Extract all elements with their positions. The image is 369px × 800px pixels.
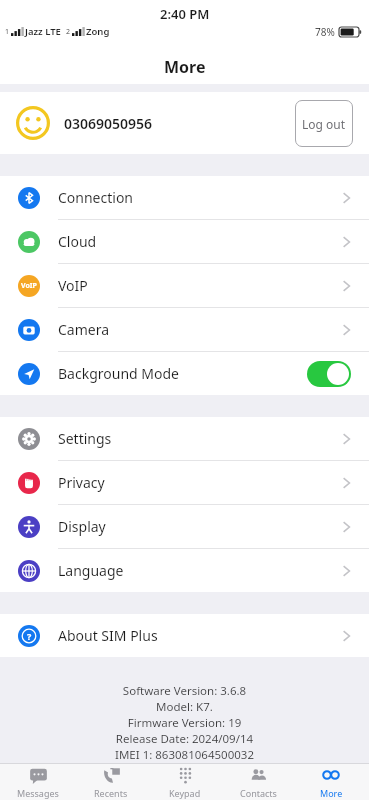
staticText: Display [58,517,342,536]
button[interactable]: Keypad [150,765,220,799]
button[interactable]: Background Mode [0,352,369,395]
staticText: Jazz LTE [25,25,61,38]
button[interactable]: Display [0,505,369,548]
staticText: Software Version: 3.6.8 [20,683,349,699]
staticText: Settings [58,429,342,448]
button[interactable]: Contacts [223,765,293,799]
staticText: Log out [302,116,346,132]
staticText: Contacts [240,787,277,799]
staticText: Camera [58,320,342,339]
staticText: Language [58,561,342,580]
staticText: Recents [94,787,128,799]
staticText: Connection [58,188,342,207]
button[interactable]: Language [0,549,369,592]
button[interactable]: Cloud [0,220,369,263]
button[interactable]: Connection [0,176,369,219]
staticText: 2 [66,27,71,37]
button[interactable]: Privacy [0,461,369,504]
staticText: VoIP [21,281,37,291]
staticText: Background Mode [58,364,307,383]
staticText: 03069050956 [64,114,295,133]
button[interactable]: Messages [3,765,73,799]
button[interactable]: Log out [295,100,353,147]
staticText: 1 [5,27,10,37]
button[interactable]: Camera [0,308,369,351]
staticText: Model: K7. [20,699,349,715]
staticText: ? [27,630,32,642]
staticText: About SIM Plus [58,626,342,645]
staticText: Privacy [58,473,342,492]
staticText: Messages [17,787,59,799]
staticText: Keypad [169,787,201,799]
button[interactable]: Background Mode toggle [307,361,351,387]
staticText: Release Date: 2024/09/14 [20,731,349,747]
staticText: Zong [86,25,110,38]
button[interactable]: ? [0,614,369,657]
staticText: Firmware Version: 19 [20,715,349,731]
staticText: VoIP [58,276,342,295]
button[interactable]: 03069050956 [0,92,369,154]
button[interactable]: More [296,765,366,799]
button[interactable]: Settings [0,417,369,460]
staticText: Cloud [58,232,342,251]
button[interactable]: Recents [76,765,146,799]
button[interactable]: VoIP [0,264,369,307]
staticText: More [164,56,206,78]
staticText: 2:40 PM [160,5,210,23]
staticText: IMEI 1: 863081064500032 [20,747,349,763]
staticText: More [320,787,343,799]
staticText: 78% [315,25,335,39]
